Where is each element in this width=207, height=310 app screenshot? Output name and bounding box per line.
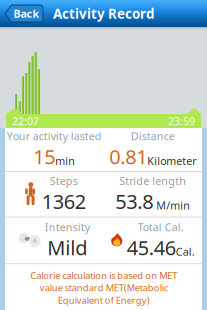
button[interactable]: Back <box>3 0 45 27</box>
staticText: Stride length <box>119 174 186 188</box>
staticText: 15 <box>33 143 55 170</box>
staticText: Back <box>13 6 39 21</box>
staticText: Intensity <box>45 220 90 234</box>
staticText: 53.8 <box>115 188 153 215</box>
staticText: Activity Record <box>53 5 154 22</box>
staticText: Calorie calculation is based on MET valu… <box>30 269 177 306</box>
staticText: Kilometer <box>147 154 196 168</box>
staticText: M/min <box>153 198 190 213</box>
staticText: Distance <box>131 129 175 143</box>
staticText: 45.46 <box>127 234 176 261</box>
staticText: min <box>55 154 75 168</box>
staticText: 23:59 <box>168 114 195 128</box>
staticText: 22:07 <box>12 114 39 128</box>
staticText: Steps <box>50 174 78 188</box>
staticText: Mild <box>47 234 87 261</box>
staticText: 0.81 <box>109 143 147 170</box>
staticText: Total Cal. <box>138 220 184 234</box>
staticText: 1362 <box>42 188 86 215</box>
staticText: Cal. <box>176 245 195 259</box>
staticText: Your activity lasted <box>7 129 102 143</box>
